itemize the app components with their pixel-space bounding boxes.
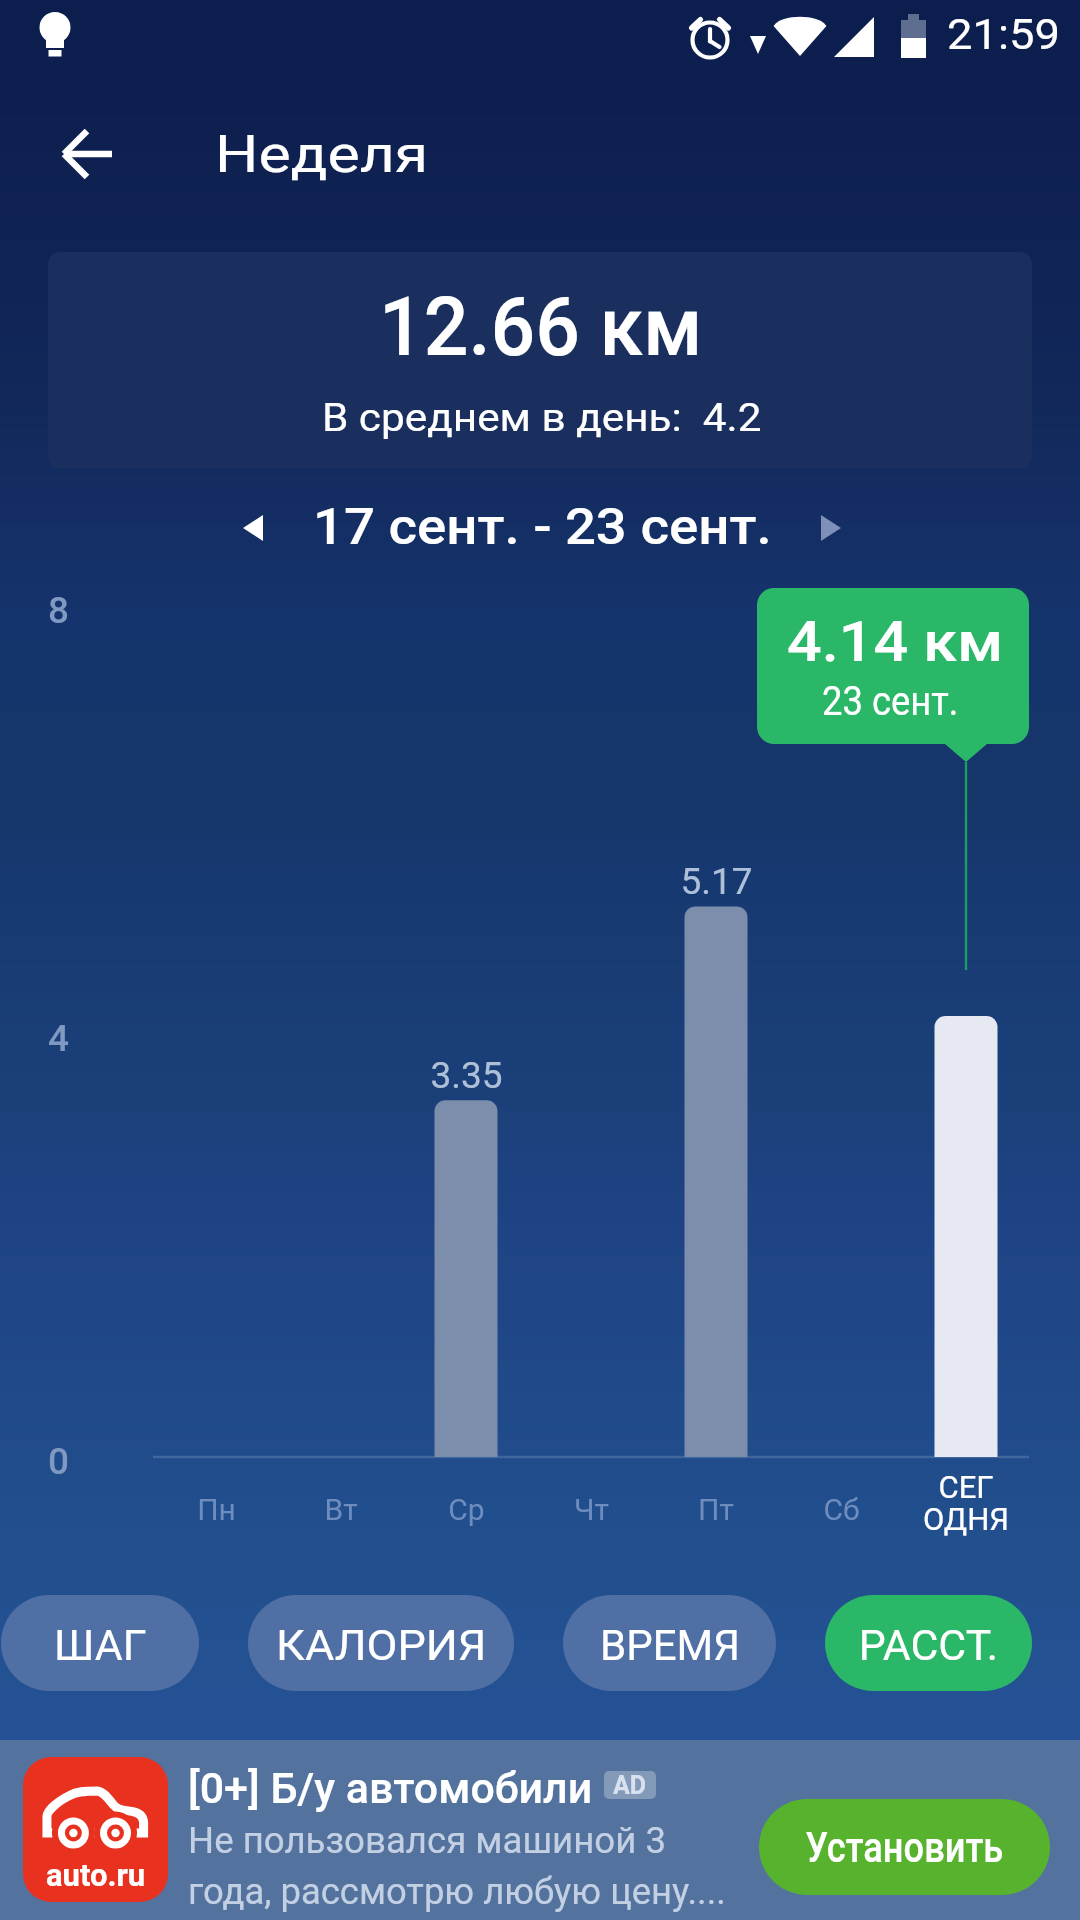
staticText: 4.14 км [787, 609, 1004, 675]
staticText: В среднем в день: 4.2 [322, 395, 762, 441]
button[interactable]: ШАГ [1, 1595, 199, 1691]
staticText: auto.ru [46, 1857, 146, 1893]
staticText: 23 сент. [822, 678, 958, 725]
staticText: 4 [48, 1017, 70, 1060]
staticText: года, рассмотрю любую цену.... [188, 1870, 727, 1913]
staticText: 3.35 [430, 1054, 503, 1097]
button[interactable]: Next week [793, 490, 869, 566]
staticText: ШАГ [54, 1621, 147, 1670]
staticText: Пн [197, 1492, 236, 1527]
button[interactable]: Previous week [215, 490, 291, 566]
staticText: [0+] Б/у автомобили [188, 1764, 593, 1813]
staticText: Чт [574, 1492, 609, 1527]
staticText: Вт [324, 1492, 358, 1527]
staticText: 17 сент. - 23 сент. [313, 498, 772, 557]
staticText: 21:59 [947, 10, 1060, 59]
button[interactable]: Back [38, 104, 138, 204]
staticText: ВРЕМЯ [600, 1621, 740, 1670]
button[interactable]: ВРЕМЯ [563, 1595, 776, 1691]
staticText: Пт [698, 1492, 734, 1527]
button[interactable]: РАССТ. [825, 1595, 1032, 1691]
staticText: Неделя [215, 124, 429, 185]
staticText: РАССТ. [859, 1621, 998, 1670]
staticText: 5.17 [680, 860, 753, 903]
staticText: 0 [48, 1440, 70, 1483]
staticText: 12.66 км [379, 279, 702, 375]
button[interactable]: 4.14 км [757, 588, 1029, 744]
staticText: Не пользовался машиной 3 [188, 1819, 666, 1862]
staticText: Ср [448, 1492, 485, 1527]
staticText: AD [613, 1771, 647, 1799]
staticText: Установить [805, 1823, 1004, 1872]
button[interactable]: КАЛОРИЯ [248, 1595, 514, 1691]
staticText: ОДНЯ [923, 1501, 1009, 1537]
staticText: 8 [48, 589, 70, 632]
button[interactable]: auto.ru [0, 1740, 1080, 1920]
button[interactable] [48, 252, 1032, 468]
button[interactable]: Установить [759, 1799, 1050, 1895]
staticText: КАЛОРИЯ [276, 1621, 487, 1670]
staticText: СЕГ [938, 1469, 994, 1505]
staticText: Сб [823, 1492, 860, 1527]
